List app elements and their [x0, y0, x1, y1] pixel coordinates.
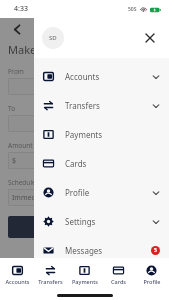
button[interactable] [8, 115, 123, 132]
staticText: 4:33 [14, 4, 28, 14]
button[interactable]: Accounts [34, 62, 169, 91]
button[interactable] [8, 20, 26, 38]
button[interactable]: Transfers [34, 91, 169, 120]
staticText: 50S [128, 6, 137, 13]
button[interactable]: Payments [34, 120, 169, 149]
staticText: Transfers [65, 100, 100, 111]
staticText: Profile [65, 187, 90, 198]
staticText: From [8, 67, 24, 76]
staticText: $ [12, 156, 17, 166]
button[interactable]: $ [8, 152, 123, 169]
staticText: Payments [65, 129, 103, 140]
button[interactable] [8, 78, 123, 95]
staticText: Messages [65, 245, 103, 256]
button[interactable]: Settings [34, 207, 169, 236]
staticText: Immediately [12, 193, 54, 203]
button[interactable]: Continue [8, 216, 128, 238]
staticText: SD [49, 34, 57, 42]
button[interactable]: SD [42, 27, 64, 49]
staticText: To [8, 104, 16, 113]
button[interactable]: Profile [135, 265, 168, 285]
button[interactable]: Cards [34, 149, 169, 178]
staticText: Payments [72, 278, 98, 285]
staticText: Accounts [5, 278, 30, 285]
button[interactable]: Payments [68, 265, 101, 285]
staticText: Settings [65, 216, 96, 227]
staticText: Cards [111, 278, 126, 285]
staticText: 5 [154, 247, 157, 254]
button[interactable]: Cards [102, 265, 135, 285]
staticText: Make a transfer [8, 42, 90, 57]
staticText: Transfers [38, 278, 63, 285]
staticText: Schedule [8, 178, 36, 187]
button[interactable]: Messages [34, 236, 169, 265]
staticText: Accounts [65, 71, 100, 82]
button[interactable]: Immediately [8, 189, 123, 206]
staticText: Cards [65, 158, 87, 169]
button[interactable]: Transfers [34, 265, 67, 285]
staticText: Amount [8, 141, 33, 150]
staticText: Profile [143, 278, 161, 285]
staticText: Continue [51, 222, 86, 233]
button[interactable]: Accounts [1, 265, 34, 285]
button[interactable]: Close menu [139, 27, 161, 49]
button[interactable]: Profile [34, 178, 169, 207]
